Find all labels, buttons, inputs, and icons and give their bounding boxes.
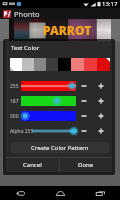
button[interactable]: Increase 000: [93, 111, 109, 121]
staticText: Done: [78, 161, 94, 169]
button[interactable]: 255 slider: [21, 81, 76, 91]
button[interactable]: Decrease 255: [76, 81, 92, 91]
staticText: Cancel: [23, 161, 42, 169]
button[interactable]: Increase 255: [93, 81, 109, 91]
button[interactable]: Cancel: [6, 158, 59, 172]
button[interactable]: 187 slider: [21, 96, 76, 106]
button[interactable]: Alpha slider: [32, 126, 77, 136]
button[interactable]: Decrease 187: [76, 96, 92, 106]
button[interactable]: Increase 187: [93, 96, 109, 106]
button[interactable]: Phonto: [0, 8, 120, 19]
staticText: PARROT: [43, 22, 92, 38]
staticText: 187: [10, 98, 19, 105]
staticText: Phonto: [14, 9, 40, 19]
button[interactable]: Create Color Pattern: [11, 142, 109, 153]
button[interactable]: Decrease Alpha: [76, 126, 92, 136]
button[interactable]: Back: [0, 186, 40, 200]
staticText: Text Color: [11, 44, 40, 52]
button[interactable]: [97, 58, 110, 71]
button[interactable]: Increase Alpha: [93, 126, 109, 136]
button[interactable]: Decrease 000: [76, 111, 92, 121]
staticText: 13:17: [102, 0, 118, 8]
button[interactable]: [10, 58, 22, 71]
button[interactable]: Done: [60, 158, 112, 172]
staticText: 255: [10, 83, 19, 90]
button[interactable]: Home: [40, 186, 80, 200]
staticText: 000: [10, 113, 19, 120]
staticText: Create Color Pattern: [31, 144, 89, 152]
button[interactable]: 000 slider: [21, 111, 76, 121]
button[interactable]: Recent apps: [80, 186, 120, 200]
staticText: Alpha 255: [10, 128, 34, 135]
